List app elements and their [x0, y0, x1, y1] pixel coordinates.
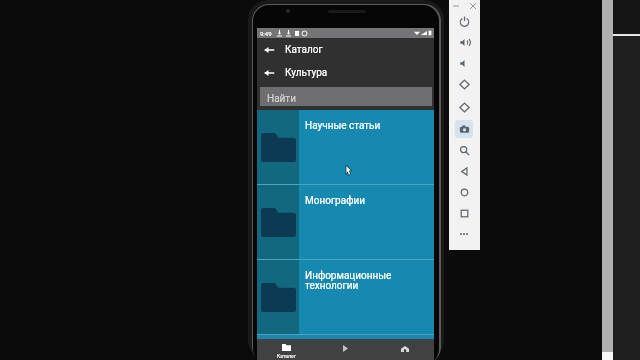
- button[interactable]: Power: [454, 11, 474, 31]
- button[interactable]: Информационные технологии: [257, 260, 434, 334]
- button[interactable]: Научные статьи: [257, 110, 434, 184]
- button[interactable]: Rotate left: [454, 74, 474, 94]
- button[interactable]: More: [454, 224, 474, 244]
- button[interactable]: Play: [316, 339, 375, 360]
- staticText: Культура: [285, 67, 328, 79]
- button[interactable]: Zoom: [454, 140, 474, 160]
- button[interactable]: Screenshot: [454, 119, 474, 139]
- button[interactable]: Overview: [454, 203, 474, 223]
- button[interactable]: Volume down: [454, 53, 474, 73]
- button[interactable]: Монографии: [257, 185, 434, 259]
- button[interactable]: Volume up: [454, 32, 474, 52]
- staticText: 9:49: [260, 30, 272, 37]
- button[interactable]: Home: [454, 182, 474, 202]
- other: Back: [264, 68, 274, 78]
- staticText: Научные статьи: [305, 120, 381, 132]
- button[interactable]: Home: [375, 339, 434, 360]
- staticText: Монографии: [305, 195, 365, 207]
- staticText: Каталог: [285, 44, 323, 56]
- other: Back: [264, 45, 274, 55]
- button[interactable]: Back: [454, 161, 474, 181]
- staticText: Информационные технологии: [305, 270, 430, 292]
- button[interactable]: Rotate right: [454, 97, 474, 117]
- button[interactable]: Back: [257, 38, 434, 61]
- button[interactable]: Найти: [260, 87, 432, 106]
- staticText: Каталог: [277, 353, 296, 359]
- button[interactable]: Каталог: [257, 339, 316, 360]
- button[interactable]: Back: [257, 61, 434, 84]
- staticText: Найти: [267, 93, 296, 105]
